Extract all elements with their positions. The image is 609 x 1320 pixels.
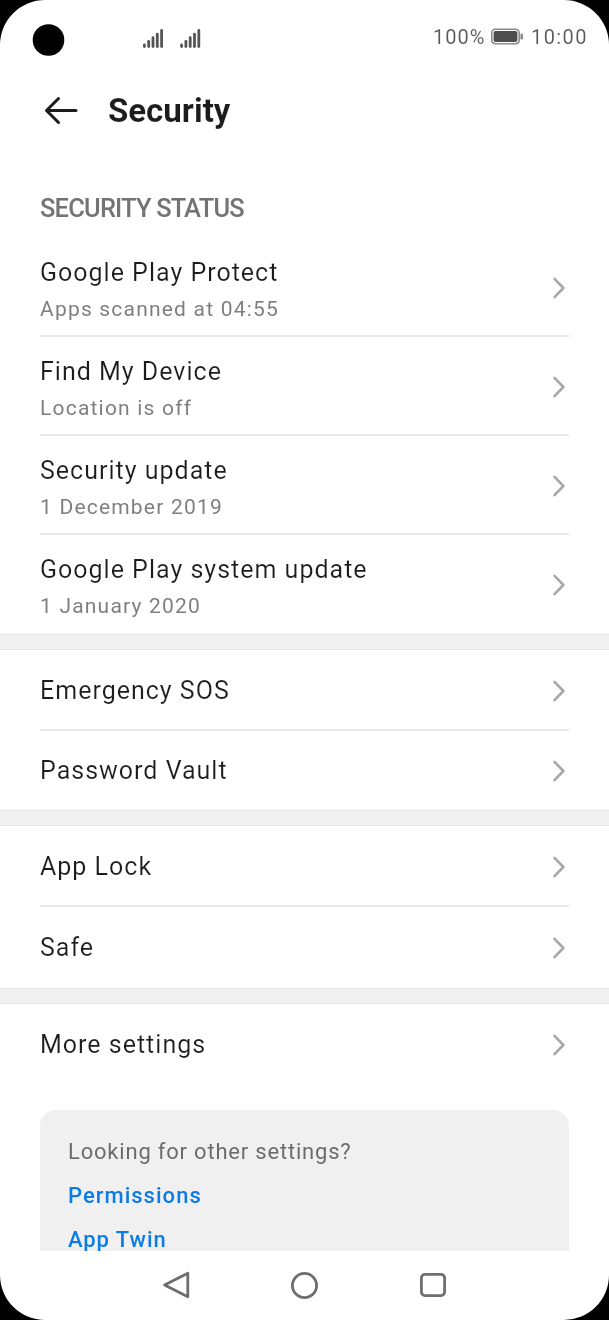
button[interactable] <box>45 97 77 124</box>
staticText: 100% <box>433 25 486 48</box>
staticText: 1 December 2019 <box>40 495 223 520</box>
staticText: Apps scanned at 04:55 <box>40 297 279 322</box>
button[interactable] <box>420 1273 446 1297</box>
staticText: Safe <box>40 933 95 962</box>
button[interactable] <box>291 1272 318 1299</box>
staticText: 10:00 <box>531 25 588 48</box>
staticText: Find My Device <box>40 357 222 386</box>
button[interactable]: App Lock <box>0 826 609 907</box>
staticText: Security <box>108 91 231 130</box>
staticText: Password Vault <box>40 756 228 785</box>
staticText: SECURITY STATUS <box>40 193 244 223</box>
button[interactable]: Google Play Protect <box>0 238 609 337</box>
button[interactable]: App Twin <box>68 1227 167 1253</box>
staticText: 1 January 2020 <box>40 594 202 619</box>
button[interactable]: More settings <box>0 1004 609 1085</box>
button[interactable]: Emergency SOS <box>0 650 609 731</box>
staticText: Google Play system update <box>40 555 368 584</box>
staticText: Google Play Protect <box>40 258 279 287</box>
staticText: More settings <box>40 1030 207 1059</box>
staticText: Looking for other settings? <box>68 1139 352 1165</box>
button[interactable]: Find My Device <box>0 337 609 436</box>
button[interactable]: Password Vault <box>0 731 609 810</box>
staticText: Security update <box>40 456 228 485</box>
button[interactable]: Google Play system update <box>0 535 609 634</box>
button[interactable]: Safe <box>0 907 609 988</box>
staticText: Location is off <box>40 396 193 421</box>
button[interactable]: Security update <box>0 436 609 535</box>
staticText: Emergency SOS <box>40 676 230 705</box>
button[interactable]: Permissions <box>68 1183 202 1209</box>
button[interactable] <box>162 1271 190 1299</box>
staticText: App Lock <box>40 852 153 881</box>
